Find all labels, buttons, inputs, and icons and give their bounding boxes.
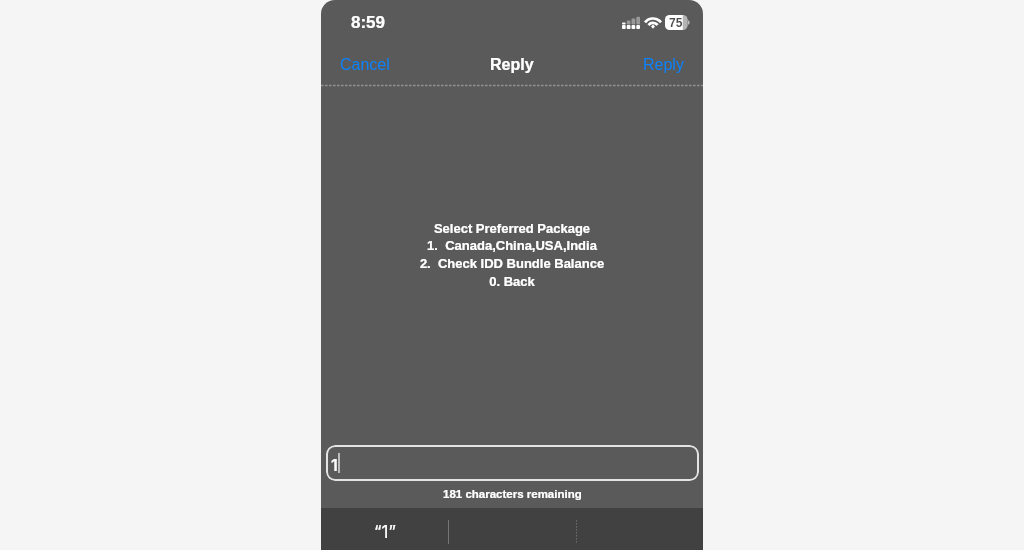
staticText: Cancel	[340, 56, 390, 74]
staticText: 8:59	[351, 13, 386, 32]
other: Cellular signal	[622, 16, 640, 29]
staticText: Reply	[490, 56, 534, 74]
button[interactable]: Reply	[624, 50, 703, 80]
staticText: “1”	[374, 522, 396, 543]
other: Battery 75 percent	[665, 15, 691, 30]
staticText: 181 characters remaining	[443, 488, 582, 501]
staticText: 1	[331, 455, 338, 474]
button[interactable]: 1	[326, 445, 699, 481]
button[interactable]: “1”	[321, 508, 448, 550]
other: Wi-Fi	[645, 16, 661, 29]
staticText: Reply	[643, 56, 684, 74]
staticText: 75	[669, 16, 683, 29]
staticText: Select Preferred Package 1. Canada,China…	[321, 221, 703, 289]
button[interactable]: Cancel	[321, 50, 409, 80]
